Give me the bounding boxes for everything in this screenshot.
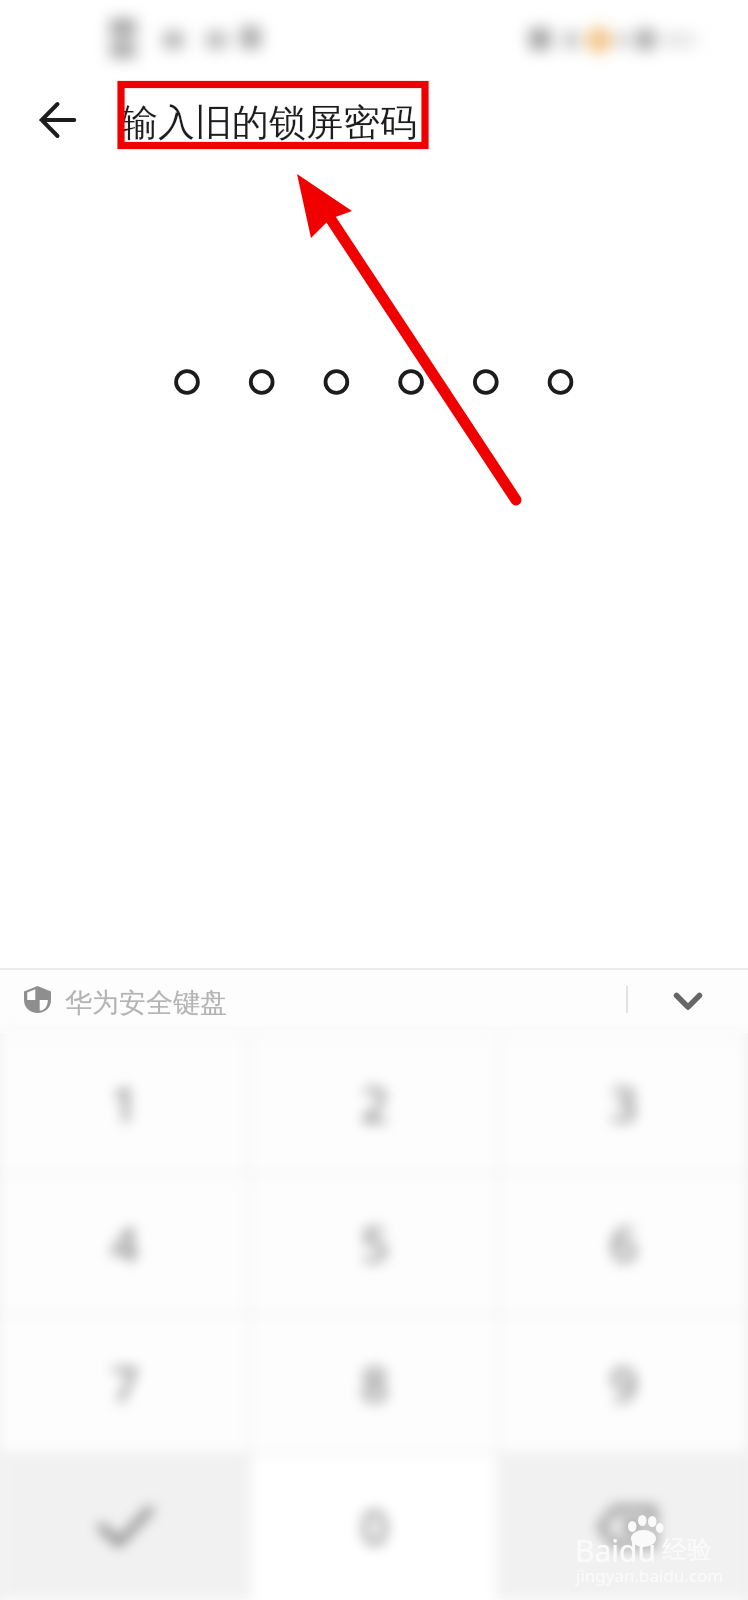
- staticText: 9: [610, 1351, 638, 1416]
- button[interactable]: Backspace: [499, 1453, 748, 1600]
- button[interactable]: 4: [0, 1173, 250, 1313]
- staticText: 4: [111, 1211, 139, 1276]
- staticText: 输入旧的锁屏密码: [121, 99, 417, 146]
- staticText: 7: [111, 1351, 139, 1416]
- button[interactable]: 5: [250, 1173, 499, 1313]
- staticText: 5: [361, 1211, 389, 1276]
- button[interactable]: 6: [499, 1173, 748, 1313]
- staticText: Baidu: [575, 1530, 657, 1571]
- staticText: 华为安全键盘: [65, 986, 227, 1020]
- staticText: 6: [610, 1211, 638, 1276]
- staticText: 2: [361, 1071, 389, 1136]
- staticText: 经验: [662, 1534, 712, 1565]
- staticText: 0: [361, 1494, 389, 1559]
- staticText: 1: [111, 1071, 139, 1136]
- button[interactable]: 8: [250, 1313, 499, 1453]
- button[interactable]: Confirm: [0, 1453, 250, 1600]
- staticText: jingyan.baidu.com: [576, 1564, 724, 1587]
- button[interactable]: 1: [0, 1033, 250, 1173]
- button[interactable]: 2: [250, 1033, 499, 1173]
- button[interactable]: 0: [250, 1453, 499, 1600]
- button[interactable]: 9: [499, 1313, 748, 1453]
- button[interactable]: 7: [0, 1313, 250, 1453]
- staticText: 8: [361, 1351, 389, 1416]
- staticText: 3: [610, 1071, 638, 1136]
- button[interactable]: Hide keyboard: [657, 970, 719, 1032]
- button[interactable]: 3: [499, 1033, 748, 1173]
- button[interactable]: Back: [29, 90, 87, 150]
